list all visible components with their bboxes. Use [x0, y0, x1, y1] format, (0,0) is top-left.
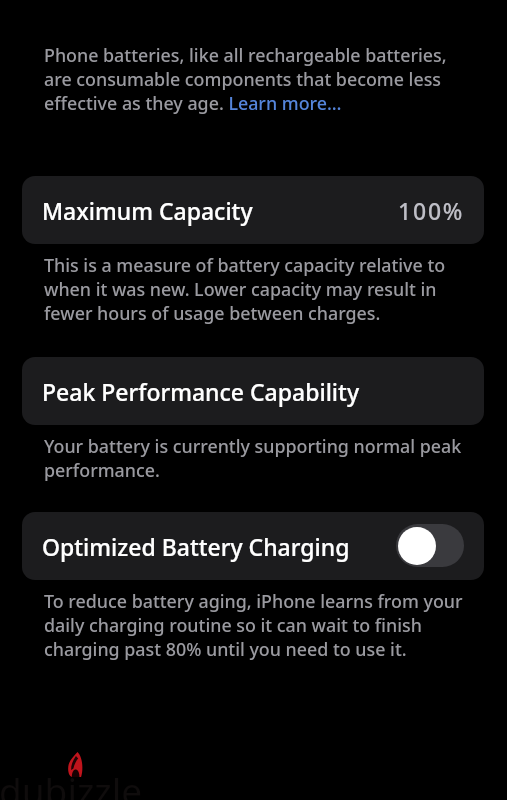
- staticText: Phone batteries, like all rechargeable b…: [44, 43, 466, 115]
- staticText: 100%: [398, 195, 465, 226]
- button[interactable]: Optimized Battery Charging switch, off: [396, 524, 464, 567]
- staticText: Peak Performance Capability: [42, 376, 360, 407]
- staticText: dubizzle: [0, 765, 143, 800]
- staticText: This is a measure of battery capacity re…: [44, 253, 466, 325]
- staticText: Optimized Battery Charging: [42, 531, 350, 562]
- button[interactable]: Peak Performance Capability: [22, 357, 484, 425]
- button[interactable]: Learn more about battery health: [44, 43, 466, 115]
- staticText: To reduce battery aging, iPhone learns f…: [44, 589, 466, 661]
- staticText: Maximum Capacity: [42, 195, 253, 226]
- staticText: Your battery is currently supporting nor…: [44, 434, 466, 482]
- button[interactable]: Maximum Capacity: [22, 176, 484, 244]
- button[interactable]: Optimized Battery Charging: [22, 512, 484, 580]
